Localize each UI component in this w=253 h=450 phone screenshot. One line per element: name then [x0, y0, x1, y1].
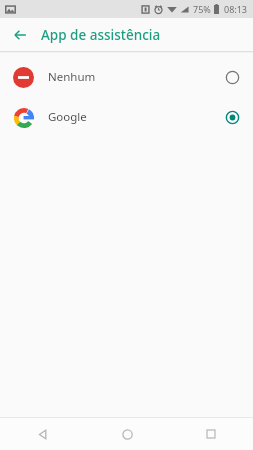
staticText: App de assistência	[41, 26, 161, 44]
button[interactable]: Voltar	[7, 22, 33, 48]
button[interactable]: Nenhum	[0, 57, 253, 97]
button[interactable]: Início	[85, 418, 169, 450]
staticText: 75%	[193, 3, 211, 15]
button[interactable]: Recentes	[169, 418, 253, 450]
staticText: 08:13	[224, 3, 248, 15]
button[interactable]: Voltar	[0, 418, 85, 450]
button[interactable]: Google	[0, 97, 253, 137]
staticText: Google	[48, 109, 225, 125]
staticText: Nenhum	[48, 69, 225, 85]
